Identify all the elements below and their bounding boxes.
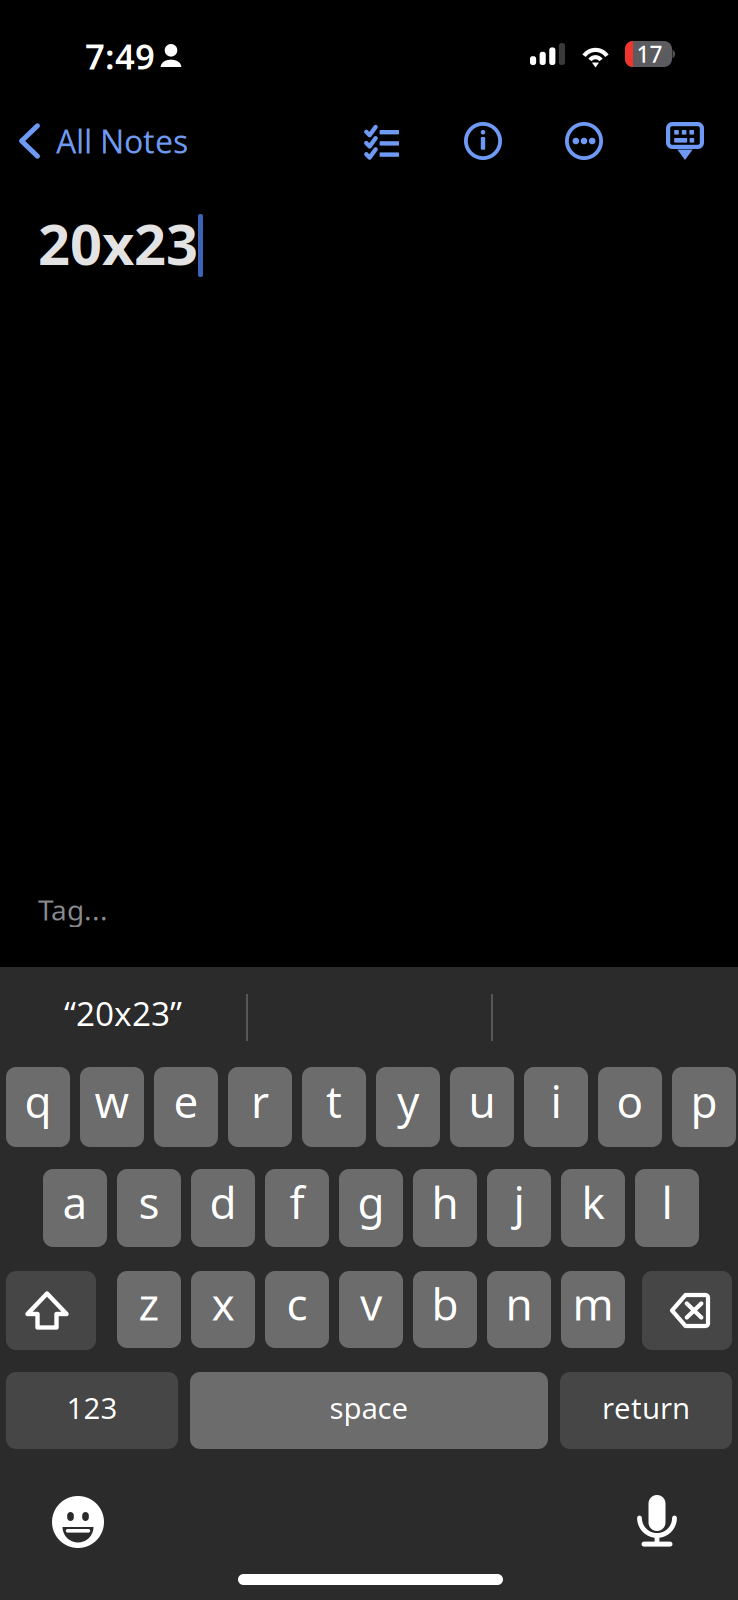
button[interactable]: f xyxy=(265,1169,329,1247)
button[interactable]: g xyxy=(339,1169,403,1247)
button[interactable]: d xyxy=(191,1169,255,1247)
button[interactable]: v xyxy=(339,1271,403,1348)
staticText: r xyxy=(251,1072,269,1130)
button[interactable]: t xyxy=(302,1067,366,1147)
button[interactable]: return xyxy=(560,1372,732,1449)
staticText: e xyxy=(173,1072,198,1130)
button[interactable]: h xyxy=(413,1169,477,1247)
staticText: return xyxy=(602,1388,690,1427)
button[interactable]: 123 xyxy=(6,1372,178,1449)
button[interactable]: Checklist xyxy=(346,104,417,179)
staticText: b xyxy=(431,1274,458,1333)
button[interactable]: k xyxy=(561,1169,625,1247)
staticText: a xyxy=(62,1173,87,1231)
button[interactable]: z xyxy=(117,1271,181,1348)
button[interactable]: y xyxy=(376,1067,440,1147)
staticText: 17 xyxy=(636,39,662,69)
staticText: 20x23 xyxy=(38,206,198,280)
staticText: h xyxy=(431,1173,458,1231)
staticText: f xyxy=(289,1173,304,1231)
staticText: k xyxy=(581,1173,604,1231)
button[interactable]: p xyxy=(672,1067,736,1147)
button[interactable]: c xyxy=(265,1271,329,1348)
staticText: “20x23” xyxy=(64,991,182,1035)
staticText: o xyxy=(616,1072,643,1130)
staticText: u xyxy=(468,1072,495,1130)
button[interactable]: All Notes xyxy=(4,113,201,169)
staticText: w xyxy=(94,1072,129,1130)
staticText: t xyxy=(326,1072,342,1130)
button[interactable]: r xyxy=(228,1067,292,1147)
staticText: g xyxy=(357,1173,384,1231)
button[interactable]: Shift xyxy=(6,1271,96,1350)
staticText: j xyxy=(513,1173,524,1231)
button[interactable]: Dictate xyxy=(631,1495,683,1547)
button[interactable]: space xyxy=(190,1372,548,1449)
button[interactable]: w xyxy=(80,1067,144,1147)
button[interactable]: s xyxy=(117,1169,181,1247)
staticText: s xyxy=(138,1173,159,1231)
staticText: m xyxy=(572,1274,613,1333)
staticText: i xyxy=(550,1072,561,1130)
button[interactable]: Emoji xyxy=(52,1496,104,1548)
button[interactable]: l xyxy=(635,1169,699,1247)
button[interactable]: m xyxy=(561,1271,625,1348)
button[interactable]: q xyxy=(6,1067,70,1147)
staticText: x xyxy=(211,1274,234,1333)
button[interactable]: o xyxy=(598,1067,662,1147)
staticText: p xyxy=(690,1072,717,1130)
button[interactable]: More xyxy=(547,103,621,179)
button[interactable]: e xyxy=(154,1067,218,1147)
button[interactable]: j xyxy=(487,1169,551,1247)
staticText: All Notes xyxy=(56,120,188,162)
staticText: Tag... xyxy=(38,891,108,928)
button[interactable]: a xyxy=(43,1169,107,1247)
staticText: v xyxy=(360,1274,382,1333)
staticText: q xyxy=(24,1072,51,1130)
staticText: space xyxy=(329,1388,408,1427)
staticText: c xyxy=(286,1274,307,1333)
button[interactable]: n xyxy=(487,1271,551,1348)
button[interactable]: Delete xyxy=(642,1271,732,1350)
staticText: n xyxy=(505,1274,532,1333)
staticText: y xyxy=(397,1072,419,1130)
button[interactable]: Info xyxy=(446,103,520,179)
staticText: 7:49 xyxy=(85,33,155,79)
button[interactable]: i xyxy=(524,1067,588,1147)
button[interactable]: u xyxy=(450,1067,514,1147)
button[interactable]: x xyxy=(191,1271,255,1348)
button[interactable]: Hide Keyboard xyxy=(648,103,722,179)
staticText: z xyxy=(138,1274,159,1333)
staticText: 123 xyxy=(66,1388,117,1427)
staticText: l xyxy=(661,1173,672,1231)
button[interactable]: b xyxy=(413,1271,477,1348)
staticText: d xyxy=(209,1173,236,1231)
